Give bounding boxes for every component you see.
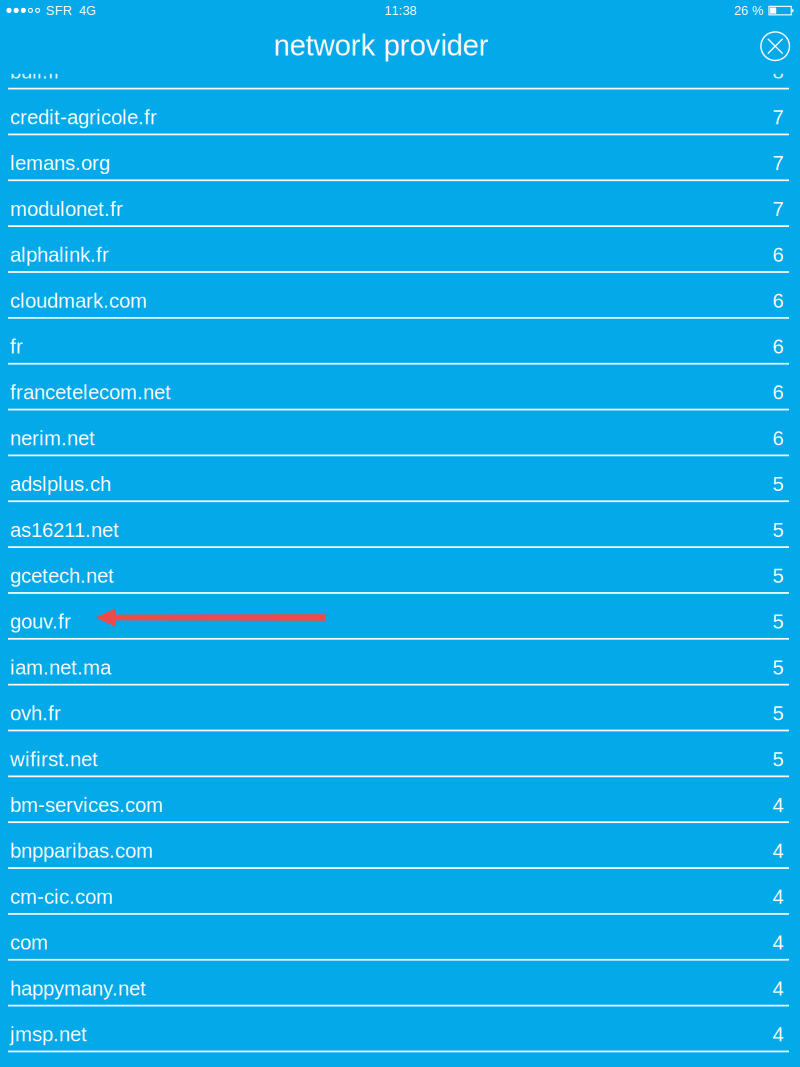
staticText: 5 bbox=[772, 656, 783, 679]
button[interactable]: as16211.net bbox=[0, 502, 800, 548]
button[interactable]: ovh.fr bbox=[0, 685, 800, 731]
staticText: gcetech.net bbox=[10, 564, 114, 587]
staticText: SFR bbox=[46, 3, 72, 18]
button[interactable]: cm-cic.com bbox=[0, 869, 800, 915]
staticText: fr bbox=[10, 335, 23, 358]
staticText: 4 bbox=[772, 931, 783, 954]
button[interactable]: bm-services.com bbox=[0, 777, 800, 823]
button[interactable]: bnpparibas.com bbox=[0, 823, 800, 869]
staticText: bnpparibas.com bbox=[10, 839, 153, 862]
staticText: 7 bbox=[772, 152, 783, 174]
staticText: com bbox=[10, 931, 48, 954]
staticText: 5 bbox=[772, 473, 783, 495]
button[interactable]: modulonet.fr bbox=[0, 181, 800, 227]
staticText: 4 bbox=[772, 839, 783, 862]
staticText: 5 bbox=[772, 702, 783, 725]
staticText: wifirst.net bbox=[10, 748, 98, 770]
staticText: cloudmark.com bbox=[10, 289, 147, 312]
staticText: 7 bbox=[772, 106, 783, 128]
button[interactable]: gouv.fr bbox=[0, 594, 800, 640]
staticText: 7 bbox=[772, 198, 783, 220]
staticText: as16211.net bbox=[10, 519, 119, 541]
staticText: 4 bbox=[772, 1023, 783, 1045]
staticText: bm-services.com bbox=[10, 794, 163, 816]
staticText: alphalink.fr bbox=[10, 243, 109, 266]
staticText: modulonet.fr bbox=[10, 198, 123, 220]
staticText: cm-cic.com bbox=[10, 885, 113, 908]
staticText: 6 bbox=[772, 335, 783, 358]
staticText: 4G bbox=[79, 3, 96, 18]
staticText: happymany.net bbox=[10, 977, 146, 1000]
button[interactable]: iam.net.ma bbox=[0, 639, 800, 685]
button[interactable]: nerim.net bbox=[0, 410, 800, 456]
staticText: 6 bbox=[772, 289, 783, 312]
staticText: jmsp.net bbox=[10, 1023, 87, 1045]
button[interactable]: Close bbox=[760, 31, 790, 61]
staticText: 4 bbox=[772, 977, 783, 1000]
staticText: 5 bbox=[772, 519, 783, 541]
button[interactable]: bull.fr bbox=[0, 43, 800, 89]
staticText: 5 bbox=[772, 564, 783, 587]
button[interactable]: alphalink.fr bbox=[0, 227, 800, 273]
staticText: nerim.net bbox=[10, 427, 95, 449]
staticText: 8 bbox=[772, 60, 783, 83]
staticText: 4 bbox=[772, 794, 783, 816]
staticText: 4 bbox=[772, 885, 783, 908]
staticText: iam.net.ma bbox=[10, 656, 111, 679]
button[interactable]: lemans.org bbox=[0, 135, 800, 181]
staticText: 5 bbox=[772, 610, 783, 633]
button[interactable]: jmsp.net bbox=[0, 1006, 800, 1052]
staticText: bull.fr bbox=[10, 60, 61, 83]
button[interactable]: credit-agricole.fr bbox=[0, 89, 800, 135]
staticText: 6 bbox=[772, 243, 783, 266]
button[interactable]: fr bbox=[0, 319, 800, 364]
staticText: 11:38 bbox=[384, 3, 416, 18]
staticText: 5 bbox=[772, 748, 783, 770]
staticText: credit-agricole.fr bbox=[10, 106, 157, 128]
button[interactable]: happymany.net bbox=[0, 960, 800, 1006]
staticText: 26 % bbox=[734, 3, 763, 18]
staticText: francetelecom.net bbox=[10, 381, 171, 404]
staticText: 6 bbox=[772, 427, 783, 449]
staticText: network provider bbox=[273, 29, 488, 62]
button[interactable]: wifirst.net bbox=[0, 731, 800, 777]
button[interactable]: com bbox=[0, 915, 800, 960]
staticText: lemans.org bbox=[10, 152, 110, 174]
staticText: gouv.fr bbox=[10, 610, 71, 633]
button[interactable]: cloudmark.com bbox=[0, 273, 800, 319]
button[interactable]: adslplus.ch bbox=[0, 456, 800, 502]
button[interactable]: francetelecom.net bbox=[0, 364, 800, 410]
staticText: adslplus.ch bbox=[10, 473, 111, 495]
staticText: 6 bbox=[772, 381, 783, 404]
button[interactable]: gcetech.net bbox=[0, 548, 800, 594]
staticText: ovh.fr bbox=[10, 702, 61, 725]
